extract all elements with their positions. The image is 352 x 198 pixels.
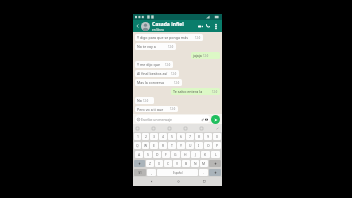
button[interactable]: R: [159, 142, 167, 149]
staticText: H: [184, 152, 187, 157]
button[interactable]: Español: [157, 169, 198, 176]
button[interactable]: Emoji: [209, 169, 221, 176]
staticText: A: [138, 152, 141, 157]
button[interactable]: Voice call: [204, 20, 212, 32]
button[interactable]: 0: [213, 133, 221, 140]
button[interactable]: .: [199, 169, 208, 176]
button[interactable]: Home: [170, 177, 186, 186]
staticText: Z: [149, 161, 151, 166]
staticText: No: [137, 98, 142, 103]
button[interactable]: P: [213, 142, 221, 149]
button[interactable]: Keyboard tool 4: [183, 126, 188, 131]
button[interactable]: Video call: [196, 20, 204, 32]
button[interactable]: F: [162, 151, 170, 158]
button[interactable]: A: [135, 151, 143, 158]
staticText: B: [185, 161, 188, 166]
button[interactable]: O: [204, 142, 212, 149]
button[interactable]: Back: [143, 177, 159, 186]
staticText: 12:0: [165, 63, 171, 67]
button[interactable]: Back: [135, 23, 141, 29]
staticText: E: [153, 143, 155, 148]
staticText: O: [207, 143, 210, 148]
staticText: 7: [189, 134, 191, 139]
button[interactable]: Keyboard tool 5: [199, 126, 204, 131]
staticText: G: [174, 152, 177, 157]
button[interactable]: 9: [204, 133, 212, 140]
staticText: 12:0: [203, 54, 209, 58]
button[interactable]: Z: [146, 160, 154, 167]
staticText: S: [147, 152, 149, 157]
button[interactable]: Te salvo entera la propia?: [171, 88, 220, 95]
button[interactable]: No: [135, 97, 154, 104]
button[interactable]: Keyboard tool 3: [167, 126, 172, 131]
button[interactable]: 6: [177, 133, 185, 140]
button[interactable]: V: [173, 160, 181, 167]
button[interactable]: S: [144, 151, 152, 158]
staticText: Pero yo a ti que podía: [137, 107, 169, 111]
button[interactable]: K: [201, 151, 210, 158]
button[interactable]: Backspace: [209, 160, 221, 167]
staticText: Español: [173, 171, 183, 175]
button[interactable]: C: [164, 160, 172, 167]
button[interactable]: G: [171, 151, 180, 158]
button[interactable]: W: [142, 142, 149, 149]
button[interactable]: D: [153, 151, 161, 158]
button[interactable]: 5: [168, 133, 176, 140]
other: Attach: [201, 118, 204, 121]
button[interactable]: 1: [134, 133, 141, 140]
button[interactable]: Al final besitos así 😘: [135, 70, 179, 77]
button[interactable]: I: [195, 142, 203, 149]
staticText: P: [216, 143, 219, 148]
button[interactable]: Recents: [196, 177, 212, 186]
button[interactable]: ,: [147, 169, 156, 176]
button[interactable]: Y me dijo que no: [135, 61, 173, 68]
staticText: L: [215, 152, 217, 157]
button[interactable]: M: [200, 160, 208, 167]
button[interactable]: jajaja: [191, 52, 220, 59]
staticText: No te voy a comer: [137, 44, 167, 49]
button[interactable]: L: [211, 151, 220, 158]
button[interactable]: N: [191, 160, 199, 167]
button[interactable]: 2: [142, 133, 149, 140]
button[interactable]: 8: [195, 133, 203, 140]
staticText: M: [202, 161, 206, 166]
button[interactable]: E: [150, 142, 158, 149]
button[interactable]: Y digo para que se ponga más cachonda: [135, 34, 203, 41]
button[interactable]: B: [182, 160, 190, 167]
staticText: R: [162, 143, 165, 148]
staticText: 9: [207, 134, 209, 139]
button[interactable]: Casada infiel: [152, 21, 196, 32]
button[interactable]: Keyboard tool 1: [135, 126, 140, 131]
button[interactable]: More options: [212, 20, 220, 32]
button[interactable]: H: [181, 151, 190, 158]
button[interactable]: J: [191, 151, 200, 158]
staticText: Te salvo entera la propia?: [173, 89, 211, 94]
button[interactable]: Mas la conversa tonta: [135, 79, 182, 86]
staticText: V: [176, 161, 179, 166]
button[interactable]: Pero yo a ti que podía: [135, 106, 178, 112]
button[interactable]: Shift: [134, 160, 145, 167]
staticText: C: [167, 161, 170, 166]
staticText: 12:0: [170, 107, 176, 111]
button[interactable]: No te voy a comer: [135, 43, 176, 50]
staticText: Al final besitos así 😘: [137, 71, 170, 76]
button[interactable]: U: [186, 142, 194, 149]
staticText: 5: [171, 134, 173, 139]
button[interactable]: T: [168, 142, 176, 149]
staticText: Mas la conversa tonta: [137, 80, 173, 85]
staticText: Casada infiel: [152, 21, 184, 28]
staticText: U: [189, 143, 192, 148]
button[interactable]: Y: [177, 142, 185, 149]
button[interactable]: Escribe un mensaje: [135, 115, 210, 123]
button[interactable]: Keyboard tool 2: [151, 126, 156, 131]
button[interactable]: 7: [186, 133, 194, 140]
button[interactable]: !#1: [134, 169, 146, 176]
button[interactable]: 4: [159, 133, 167, 140]
button[interactable]: Q: [134, 142, 141, 149]
staticText: 12:0: [168, 45, 174, 49]
button[interactable]: X: [155, 160, 163, 167]
button[interactable]: Collapse keyboard: [215, 126, 220, 131]
button[interactable]: 3: [150, 133, 158, 140]
button[interactable]: Send: [211, 115, 220, 124]
staticText: 12:0: [174, 81, 180, 85]
